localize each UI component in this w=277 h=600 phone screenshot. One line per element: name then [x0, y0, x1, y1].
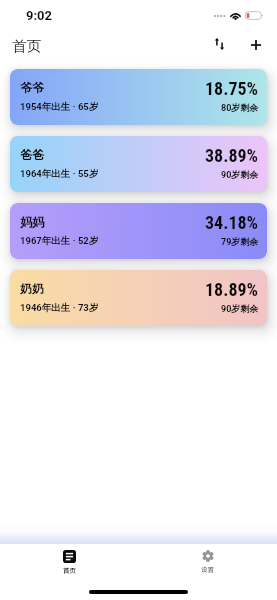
staticText: 首页 [12, 37, 41, 55]
staticText: 1967年出生 · 52岁 [20, 235, 99, 247]
staticText: 80岁剩余 [221, 102, 259, 113]
staticText: 爸爸 [20, 147, 44, 162]
button[interactable]: 首页 [47, 548, 92, 576]
staticText: 1954年出生 · 65岁 [20, 101, 99, 113]
staticText: 1964年出生 · 55岁 [20, 168, 99, 180]
staticText: 90岁剩余 [221, 169, 259, 180]
staticText: 首页 [63, 565, 76, 574]
staticText: 79岁剩余 [221, 236, 259, 247]
staticText: 34.18% [205, 212, 259, 233]
staticText: 18.75% [205, 78, 259, 99]
staticText: 90岁剩余 [221, 303, 259, 314]
staticText: 1946年出生 · 73岁 [20, 302, 99, 314]
staticText: 38.89% [205, 145, 259, 166]
button[interactable]: 妈妈 [10, 203, 267, 259]
staticText: 爷爷 [20, 80, 44, 95]
button[interactable]: 设置 [185, 548, 230, 575]
button[interactable]: Sort [206, 31, 232, 57]
staticText: 18.89% [205, 279, 259, 300]
button[interactable]: Add [243, 32, 269, 58]
staticText: 9:02 [26, 8, 53, 23]
staticText: 奶奶 [20, 281, 44, 296]
button[interactable]: 爷爷 [10, 69, 267, 125]
button[interactable]: 爸爸 [10, 136, 267, 192]
button[interactable]: 奶奶 [10, 270, 267, 326]
staticText: 妈妈 [20, 214, 44, 229]
staticText: 设置 [201, 564, 214, 573]
